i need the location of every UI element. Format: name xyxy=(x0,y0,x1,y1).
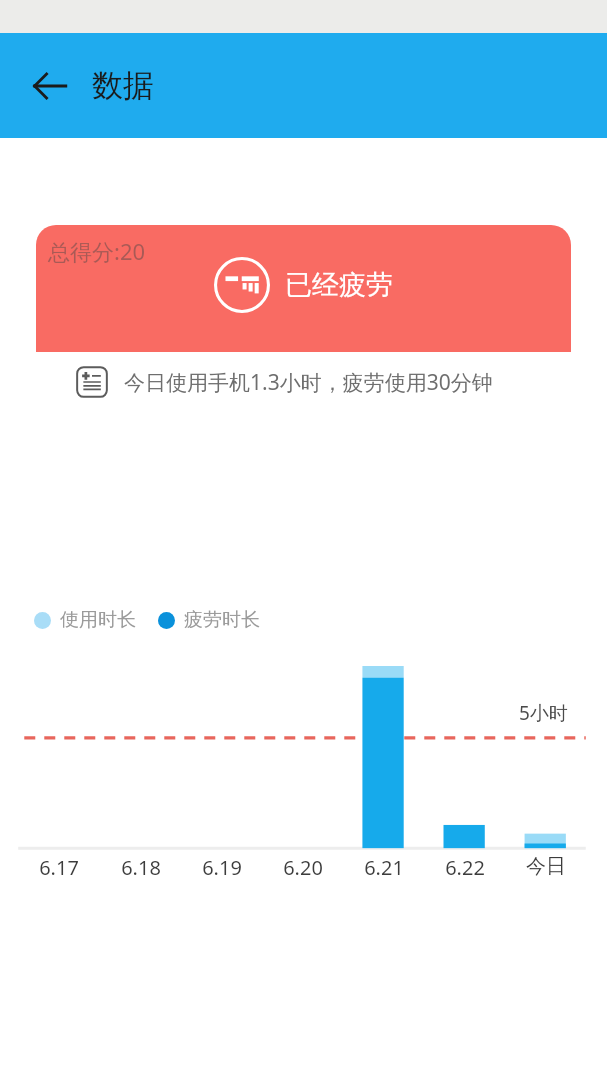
staticText: 6.18 xyxy=(121,854,161,881)
staticText: 6.22 xyxy=(445,854,485,881)
staticText: 使用时长 xyxy=(60,608,136,632)
staticText: 总得分:20 xyxy=(48,236,146,266)
button[interactable]: 总得分:20 xyxy=(36,225,571,412)
staticText: 今日使用手机1.3小时，疲劳使用30分钟 xyxy=(124,368,493,397)
staticText: 6.17 xyxy=(39,854,79,881)
staticText: 今日 xyxy=(526,854,566,879)
staticText: 6.21 xyxy=(364,854,404,881)
staticText: 数据 xyxy=(92,66,154,105)
staticText: 5小时 xyxy=(519,700,568,726)
staticText: 已经疲劳 xyxy=(285,268,393,302)
staticText: 6.20 xyxy=(283,854,323,881)
staticText: 6.19 xyxy=(202,854,242,881)
button[interactable]: Back xyxy=(22,59,76,113)
staticText: 疲劳时长 xyxy=(184,608,260,632)
